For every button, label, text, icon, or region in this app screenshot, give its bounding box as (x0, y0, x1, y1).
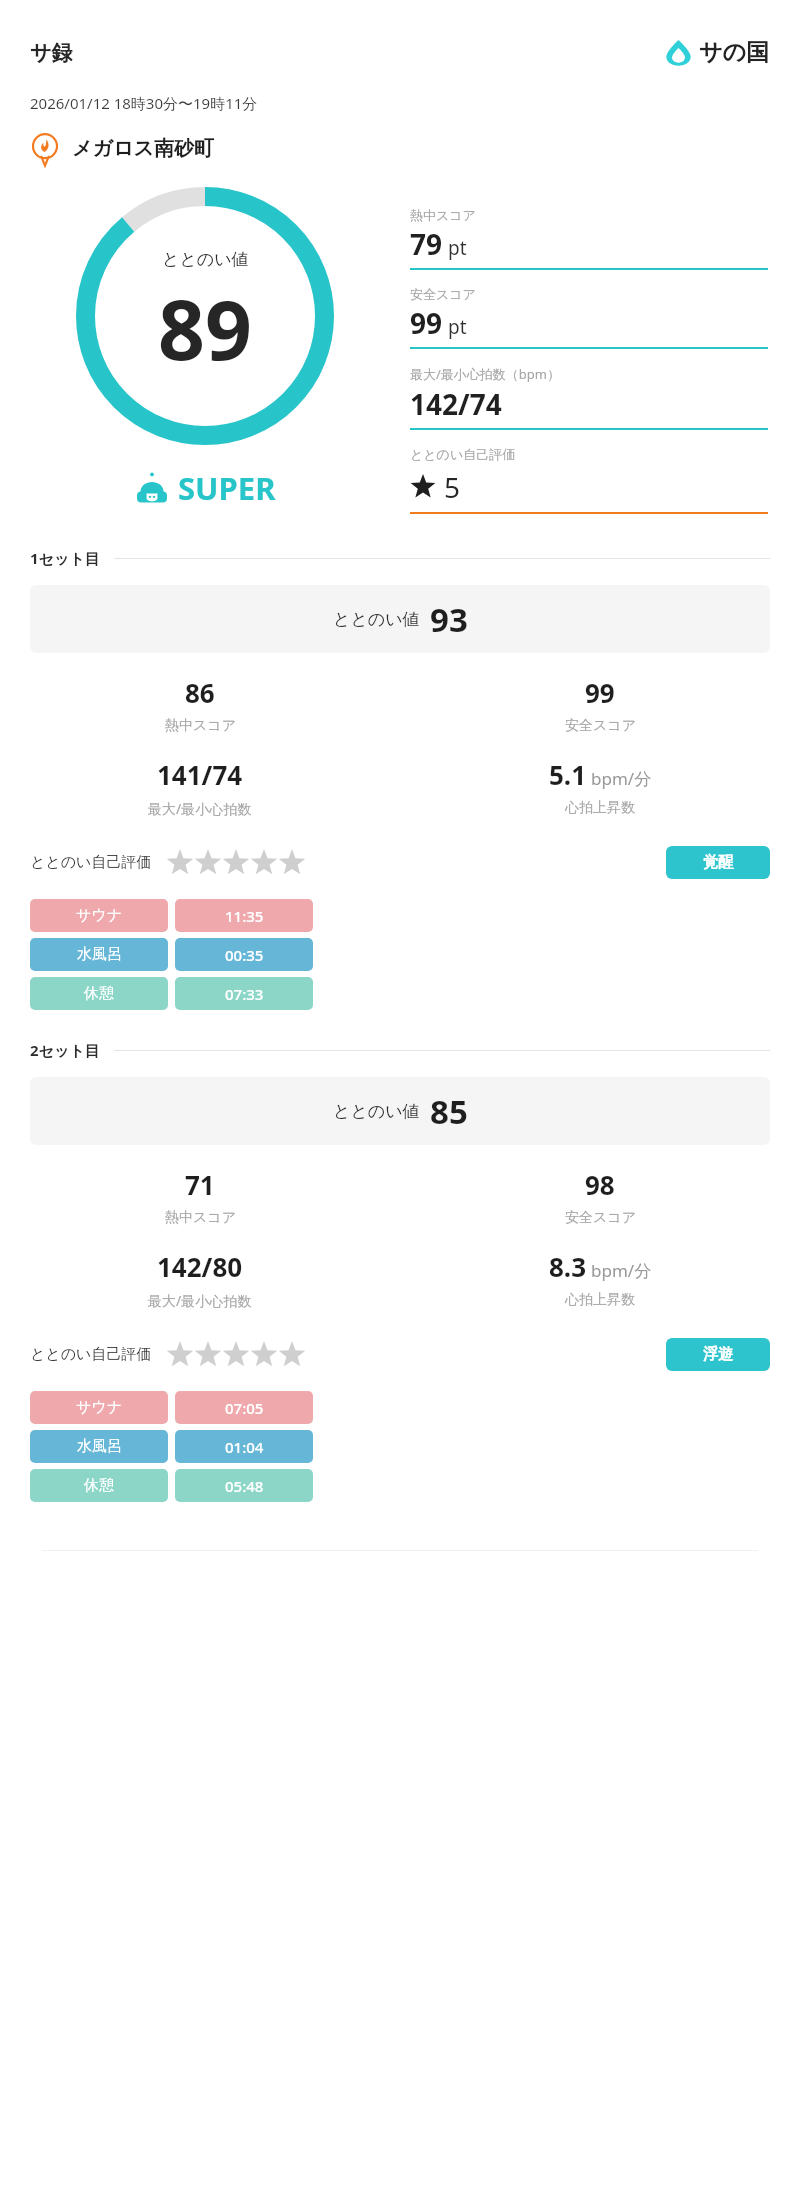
button[interactable]: 00:35 (175, 938, 313, 971)
button[interactable] (166, 849, 306, 877)
button[interactable]: サウナ (30, 899, 168, 932)
staticText: 休憩 (84, 1476, 114, 1495)
button[interactable]: 07:33 (175, 977, 313, 1010)
staticText: 熱中スコア (410, 207, 476, 223)
staticText: 07:33 (225, 984, 264, 1004)
staticText: 89 (158, 272, 252, 384)
staticText: 心拍上昇数 (565, 799, 635, 817)
staticText: 最大/最小心拍数 (148, 799, 252, 818)
staticText: サの国 (699, 38, 770, 67)
staticText: 07:05 (225, 1398, 264, 1418)
staticText: 8.3 (549, 1249, 587, 1284)
staticText: 86 (185, 675, 215, 710)
button[interactable]: 11:35 (175, 899, 313, 932)
staticText: 2026/01/12 18時30分〜19時11分 (30, 93, 258, 113)
staticText: 05:48 (225, 1476, 264, 1496)
staticText: 水風呂 (77, 945, 122, 964)
staticText: 5.1 (549, 757, 587, 792)
staticText: 1セット目 (30, 548, 100, 568)
staticText: 98 (585, 1167, 615, 1202)
staticText: 浮遊 (703, 1345, 733, 1364)
staticText: 99 (585, 675, 615, 710)
staticText: ととのい自己評価 (30, 1345, 152, 1364)
staticText: 93 (430, 597, 468, 642)
button[interactable]: ととのい値 (30, 585, 770, 653)
staticText: 最大/最小心拍数 (148, 1291, 252, 1310)
button[interactable]: 休憩 (30, 1469, 168, 1502)
button[interactable]: 水風呂 (30, 938, 168, 971)
staticText: ととのい自己評価 (410, 446, 516, 462)
staticText: メガロス南砂町 (72, 136, 214, 161)
button[interactable]: 浮遊 (666, 1338, 770, 1371)
staticText: 142/74 (410, 385, 502, 423)
staticText: 5 (444, 468, 461, 506)
staticText: 11:35 (225, 906, 264, 926)
staticText: 心拍上昇数 (565, 1291, 635, 1309)
staticText: ととのい自己評価 (30, 853, 152, 872)
staticText: 85 (430, 1089, 468, 1134)
staticText: 2セット目 (30, 1040, 100, 1060)
staticText: ととのい値 (162, 249, 249, 270)
staticText: 安全スコア (565, 717, 636, 735)
staticText: サウナ (76, 1398, 123, 1417)
button[interactable]: 05:48 (175, 1469, 313, 1502)
staticText: 熱中スコア (165, 1209, 236, 1227)
button[interactable]: 覚醒 (666, 846, 770, 879)
staticText: 水風呂 (77, 1437, 122, 1456)
button[interactable]: サウナ (30, 1391, 168, 1424)
button[interactable]: 01:04 (175, 1430, 313, 1463)
staticText: ととのい値 (333, 1101, 420, 1122)
button[interactable]: ととのい値 (30, 1077, 770, 1145)
staticText: 覚醒 (703, 853, 733, 872)
button[interactable] (166, 1341, 306, 1369)
button[interactable]: 07:05 (175, 1391, 313, 1424)
staticText: 休憩 (84, 984, 114, 1003)
staticText: 79 (410, 225, 443, 263)
staticText: 71 (185, 1167, 215, 1202)
staticText: 141/74 (157, 757, 243, 792)
staticText: SUPER (178, 467, 276, 509)
staticText: 00:35 (225, 945, 264, 965)
staticText: 最大/最小心拍数（bpm） (410, 365, 560, 383)
staticText: 142/80 (157, 1249, 243, 1284)
staticText: 安全スコア (565, 1209, 636, 1227)
staticText: bpm/分 (591, 1259, 652, 1282)
staticText: 99 (410, 304, 443, 342)
staticText: 安全スコア (410, 286, 476, 302)
button[interactable]: 休憩 (30, 977, 168, 1010)
staticText: 熱中スコア (165, 717, 236, 735)
staticText: ととのい値 (333, 609, 420, 630)
button[interactable]: SUPER (135, 467, 276, 509)
staticText: pt (448, 314, 467, 340)
staticText: サウナ (76, 906, 123, 925)
staticText: 01:04 (225, 1437, 264, 1457)
staticText: pt (448, 235, 467, 261)
staticText: サ録 (30, 40, 73, 66)
button[interactable]: 水風呂 (30, 1430, 168, 1463)
staticText: bpm/分 (591, 767, 652, 790)
